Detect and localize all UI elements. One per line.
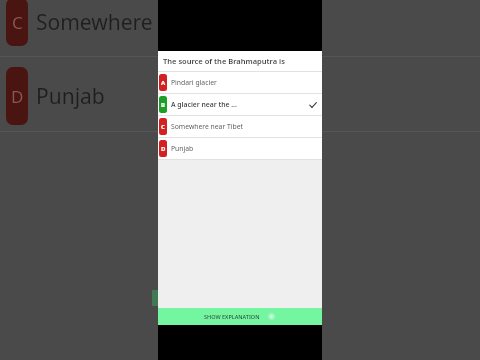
staticText: B (161, 101, 165, 109)
staticText: Pindari glacier (171, 78, 217, 87)
button[interactable]: D (158, 138, 322, 159)
button[interactable]: C (158, 116, 322, 137)
staticText: C (12, 11, 23, 34)
staticText: Punjab (36, 82, 105, 111)
button[interactable]: B (158, 94, 322, 115)
staticText: A glacier near the Mansarovar Lake (171, 100, 239, 109)
button[interactable]: SHOW EXPLANATION (158, 308, 322, 325)
staticText: A (161, 79, 166, 87)
staticText: Somewhere near Tibet (36, 8, 259, 37)
button[interactable]: A (158, 72, 322, 93)
staticText: The source of the Brahmaputra is (163, 56, 285, 66)
staticText: Somewhere near Tibet (171, 122, 243, 131)
staticText: D (11, 85, 24, 108)
staticText: C (161, 123, 165, 131)
staticText: D (161, 145, 166, 153)
staticText: Punjab (171, 144, 194, 153)
staticText: SHOW EXPLANATION (204, 313, 260, 320)
